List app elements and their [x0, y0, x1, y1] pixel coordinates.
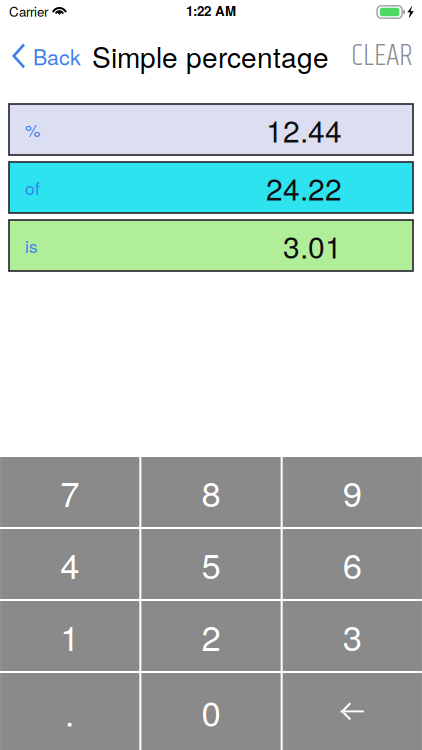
button[interactable]: 1 — [0, 601, 139, 671]
staticText: of — [25, 175, 40, 200]
button[interactable]: 5 — [141, 529, 281, 599]
staticText: 7 — [60, 467, 79, 517]
button[interactable]: is — [9, 220, 413, 271]
button[interactable]: 3 — [283, 601, 422, 671]
staticText: 9 — [343, 467, 362, 517]
staticText: . — [65, 687, 75, 736]
button[interactable]: . — [0, 673, 139, 750]
button[interactable]: 4 — [0, 529, 139, 599]
staticText: 12.44 — [266, 108, 342, 151]
staticText: 3.01 — [283, 224, 342, 267]
staticText: Back — [33, 41, 81, 71]
staticText: 6 — [343, 539, 362, 589]
button[interactable]: 9 — [283, 457, 422, 527]
staticText: 8 — [201, 467, 220, 517]
staticText: 5 — [201, 539, 220, 589]
button[interactable] — [283, 673, 422, 750]
button[interactable]: 6 — [283, 529, 422, 599]
staticText: 1 — [60, 611, 79, 661]
staticText: 3 — [343, 611, 362, 661]
staticText: Carrier — [9, 1, 48, 21]
button[interactable]: % — [9, 104, 413, 155]
button[interactable]: CLEAR — [351, 24, 422, 88]
button[interactable]: 0 — [141, 673, 281, 750]
button[interactable]: 7 — [0, 457, 139, 527]
button[interactable]: of — [9, 162, 413, 213]
button[interactable]: Back — [0, 24, 89, 88]
staticText: 4 — [60, 539, 79, 589]
staticText: 1:22 AM — [186, 1, 236, 20]
staticText: 24.22 — [266, 166, 342, 209]
staticText: 2 — [201, 611, 220, 661]
staticText: % — [25, 117, 40, 142]
button[interactable]: 2 — [141, 601, 281, 671]
staticText: is — [25, 233, 38, 258]
staticText: Simple percentage — [92, 36, 329, 76]
staticText: 0 — [201, 687, 220, 736]
button[interactable]: 8 — [141, 457, 281, 527]
staticText: CLEAR — [351, 32, 413, 80]
